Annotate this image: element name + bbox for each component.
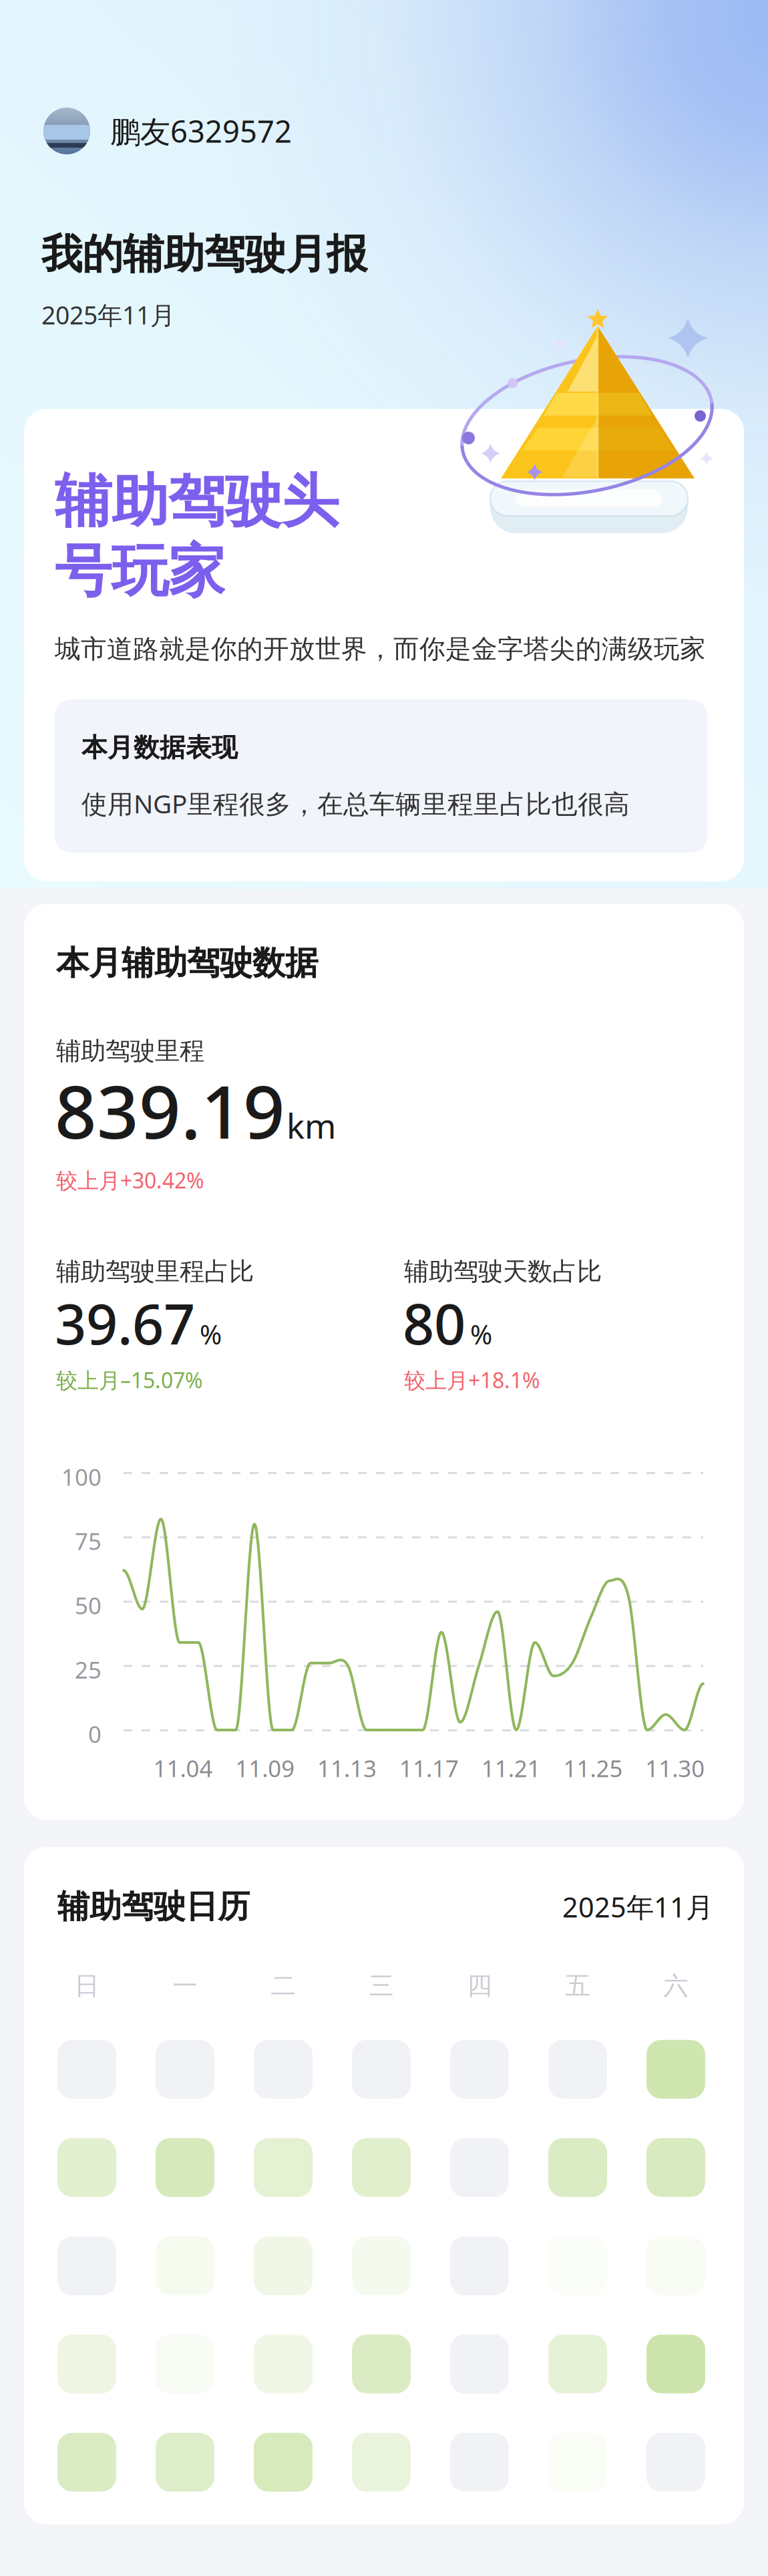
button[interactable]: 鹏友6329572 <box>0 108 292 154</box>
staticText: 一 <box>173 1971 197 2001</box>
staticText: 鹏友6329572 <box>110 111 292 151</box>
staticText: 我的辅助驾驶月报 <box>41 229 367 280</box>
staticText: 使用NGP里程很多，在总车辆里程里占比也很高 <box>81 786 630 820</box>
staticText: 较上月+30.42% <box>56 1166 204 1194</box>
staticText: % <box>200 1316 222 1352</box>
staticText: 0 <box>88 1718 102 1749</box>
staticText: 11.30 <box>645 1753 705 1783</box>
staticText: 二 <box>271 1971 296 2001</box>
staticText: 城市道路就是你的开放世界，而你是金字塔尖的满级玩家 <box>55 633 706 665</box>
staticText: 辅助驾驶日历 <box>57 1887 250 1926</box>
staticText: 本月辅助驾驶数据 <box>56 943 318 983</box>
staticText: 39.67 <box>55 1286 195 1360</box>
staticText: 较上月–15.07% <box>56 1366 203 1394</box>
staticText: 辅助驾驶头 号玩家 <box>55 466 339 606</box>
staticText: 11.21 <box>481 1753 541 1783</box>
staticText: 11.04 <box>153 1753 213 1783</box>
staticText: 75 <box>75 1526 102 1556</box>
staticText: 11.17 <box>399 1753 459 1783</box>
staticText: 本月数据表现 <box>81 732 238 763</box>
staticText: 2025年11月 <box>41 298 175 331</box>
staticText: 较上月+18.1% <box>404 1366 540 1394</box>
staticText: 2025年11月 <box>562 1888 713 1925</box>
staticText: 辅助驾驶里程占比 <box>56 1256 254 1287</box>
staticText: 六 <box>663 1971 688 2001</box>
staticText: 80 <box>403 1286 465 1360</box>
staticText: 50 <box>75 1590 102 1621</box>
staticText: 11.25 <box>563 1753 623 1783</box>
staticText: 25 <box>75 1654 102 1685</box>
staticText: km <box>286 1103 336 1148</box>
staticText: 三 <box>369 1971 394 2001</box>
staticText: 11.09 <box>235 1753 295 1783</box>
staticText: 辅助驾驶天数占比 <box>404 1256 602 1287</box>
staticText: 五 <box>565 1971 590 2001</box>
staticText: 日 <box>74 1971 99 2001</box>
staticText: 四 <box>467 1971 492 2001</box>
staticText: % <box>470 1316 492 1352</box>
staticText: 100 <box>61 1461 102 1492</box>
staticText: 11.13 <box>317 1753 377 1783</box>
staticText: 辅助驾驶里程 <box>56 1036 204 1066</box>
staticText: 839.19 <box>55 1062 285 1159</box>
